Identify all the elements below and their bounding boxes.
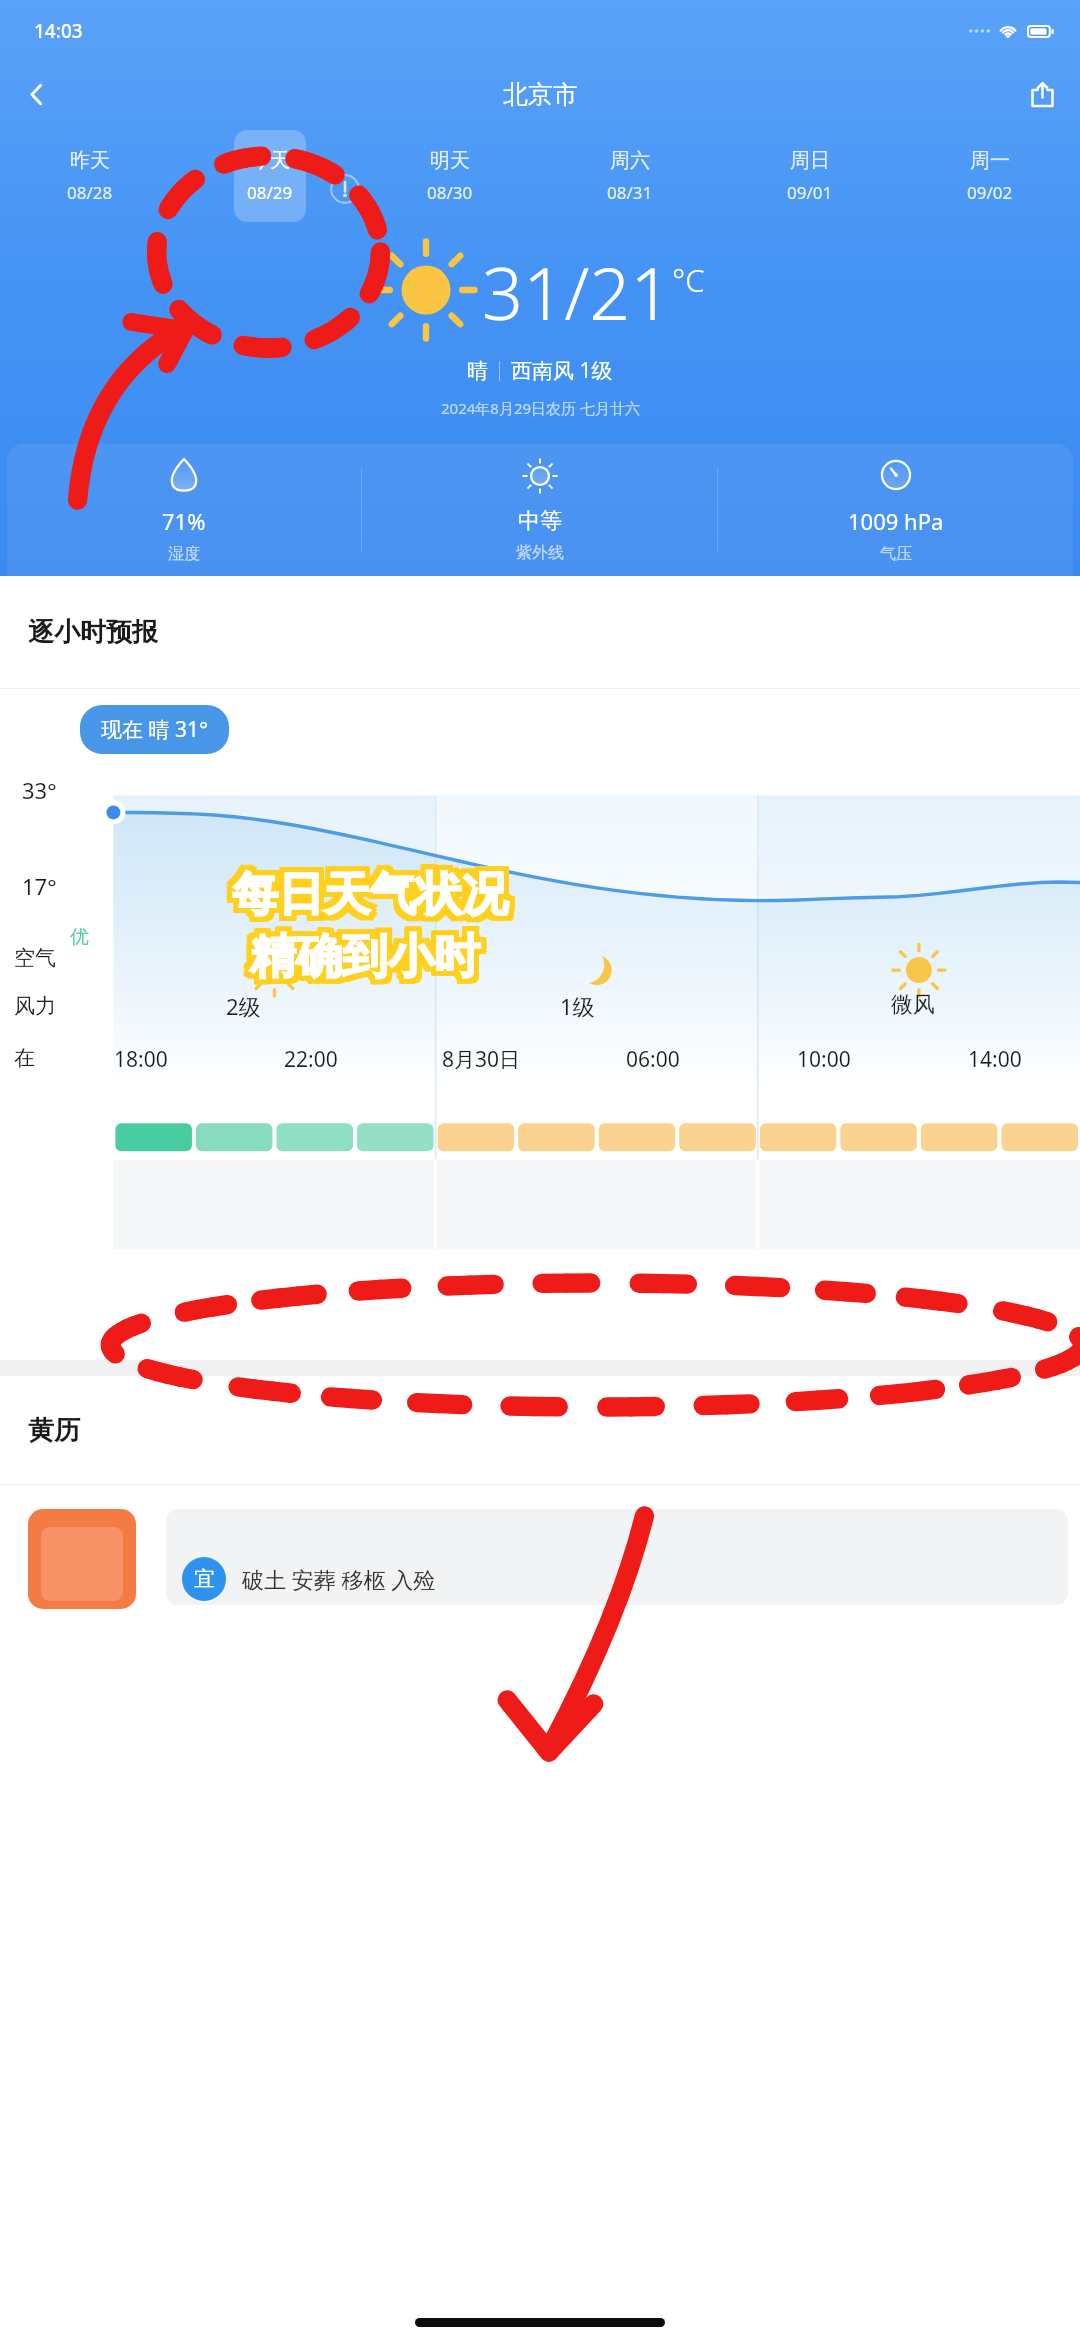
button[interactable]: 宜 — [166, 1509, 1068, 1605]
staticText: 精确到小时 — [255, 933, 485, 991]
staticText: 每日天气状况 — [232, 871, 508, 929]
button[interactable]: Weather alert — [330, 174, 360, 204]
staticText: 每日天气状况 — [229, 863, 505, 921]
staticText: 每日天气状况 — [229, 866, 505, 924]
button[interactable]: Share — [1018, 70, 1066, 118]
staticText: 昨天 — [70, 148, 110, 173]
staticText: 精确到小时 — [247, 925, 477, 983]
staticText: 中等 — [518, 507, 562, 535]
staticText: 精确到小时 — [255, 928, 485, 986]
staticText: 每日天气状况 — [227, 861, 503, 919]
button[interactable]: 周一 — [954, 130, 1026, 222]
staticText: 西南风 1级 — [511, 356, 613, 385]
staticText: 每日天气状况 — [232, 866, 508, 924]
staticText: 北京市 — [503, 79, 578, 110]
button[interactable]: Back — [12, 70, 60, 118]
staticText: 每日天气状况 — [232, 863, 508, 921]
staticText: 14:00 — [968, 1045, 1022, 1074]
staticText: 每日天气状况 — [235, 869, 511, 927]
staticText: 微风 — [891, 991, 935, 1019]
staticText: 精确到小时 — [247, 931, 477, 989]
staticText: 明天 — [430, 148, 470, 173]
staticText: 每日天气状况 — [227, 863, 503, 921]
staticText: 08/28 — [67, 181, 113, 204]
staticText: 精确到小时 — [255, 923, 485, 981]
button[interactable]: 今天 — [234, 130, 306, 222]
staticText: 1009 hPa — [848, 506, 944, 536]
staticText: 每日天气状况 — [232, 869, 508, 927]
staticText: 每日天气状况 — [227, 866, 503, 924]
staticText: 精确到小时 — [245, 925, 475, 983]
button[interactable]: 昨天 — [54, 130, 126, 222]
staticText: 逐小时预报 — [28, 616, 158, 649]
staticText: 每日天气状况 — [237, 866, 513, 924]
staticText: 优 — [70, 925, 89, 949]
staticText: 破土 安葬 移柩 入殓 — [242, 1564, 436, 1594]
staticText: 精确到小时 — [245, 933, 475, 991]
staticText: 精确到小时 — [245, 931, 475, 989]
staticText: 33° — [22, 775, 57, 805]
staticText: 每日天气状况 — [232, 861, 508, 919]
staticText: 1级 — [560, 991, 595, 1021]
staticText: 精确到小时 — [247, 933, 477, 991]
staticText: 08/31 — [607, 181, 653, 204]
staticText: 31/21 — [482, 243, 672, 341]
staticText: 每日天气状况 — [237, 861, 513, 919]
staticText: 每日天气状况 — [235, 866, 511, 924]
staticText: °C — [672, 259, 705, 301]
staticText: 精确到小时 — [245, 923, 475, 981]
staticText: 每日天气状况 — [229, 861, 505, 919]
staticText: 每日天气状况 — [227, 871, 503, 929]
staticText: 每日天气状况 — [227, 869, 503, 927]
staticText: 精确到小时 — [250, 928, 480, 986]
staticText: 14:03 — [34, 18, 83, 44]
staticText: 精确到小时 — [255, 931, 485, 989]
staticText: 精确到小时 — [247, 923, 477, 981]
staticText: 黄历 — [28, 1414, 80, 1447]
staticText: 06:00 — [626, 1045, 680, 1074]
button[interactable]: 周六 — [594, 130, 666, 222]
button[interactable]: 明天 — [414, 130, 486, 222]
staticText: 精确到小时 — [253, 933, 483, 991]
staticText: 2级 — [226, 991, 261, 1021]
staticText: 每日天气状况 — [229, 869, 505, 927]
button[interactable]: 中等 — [362, 444, 717, 576]
staticText: 每日天气状况 — [237, 869, 513, 927]
staticText: 现在 晴 31° — [101, 715, 208, 744]
staticText: 湿度 — [168, 544, 200, 564]
staticText: 精确到小时 — [247, 928, 477, 986]
staticText: 精确到小时 — [250, 931, 480, 989]
button[interactable]: 1009 hPa — [718, 444, 1073, 576]
staticText: 精确到小时 — [253, 925, 483, 983]
staticText: 气压 — [880, 544, 912, 564]
staticText: 周六 — [610, 148, 650, 173]
staticText: 09/02 — [967, 181, 1013, 204]
staticText: 22:00 — [284, 1045, 338, 1074]
staticText: 08/29 — [247, 181, 293, 204]
staticText: 精确到小时 — [255, 925, 485, 983]
staticText: 周一 — [970, 148, 1010, 173]
staticText: 每日天气状况 — [237, 871, 513, 929]
staticText: 周日 — [790, 148, 830, 173]
staticText: 2024年8月29日农历 七月廿六 — [441, 398, 640, 418]
staticText: 每日天气状况 — [237, 863, 513, 921]
staticText: 精确到小时 — [253, 923, 483, 981]
staticText: 精确到小时 — [250, 925, 480, 983]
button[interactable] — [28, 1509, 136, 1609]
staticText: 在 — [14, 1045, 35, 1071]
staticText: 09/01 — [787, 181, 833, 204]
button[interactable]: 周日 — [774, 130, 846, 222]
staticText: 精确到小时 — [250, 923, 480, 981]
staticText: 空气 — [14, 945, 56, 971]
staticText: 风力 — [14, 993, 56, 1019]
staticText: 今天 — [250, 148, 290, 173]
staticText: 紫外线 — [516, 543, 564, 563]
staticText: 每日天气状况 — [235, 861, 511, 919]
button[interactable]: 71% — [7, 444, 361, 576]
staticText: 08/30 — [427, 181, 473, 204]
staticText: 精确到小时 — [253, 931, 483, 989]
staticText: 71% — [162, 506, 206, 536]
button[interactable]: 现在 晴 31° — [80, 705, 229, 754]
staticText: 10:00 — [797, 1045, 851, 1074]
staticText: 每日天气状况 — [235, 871, 511, 929]
